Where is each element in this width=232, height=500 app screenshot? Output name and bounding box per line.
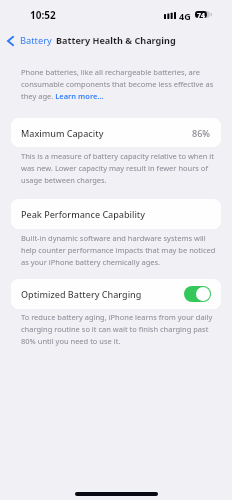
staticText: Built-in dynamic software and hardware s… <box>21 233 216 268</box>
button[interactable]: Battery <box>7 31 52 50</box>
staticText: 10:52 <box>30 8 56 22</box>
staticText: Phone batteries, like all rechargeable b… <box>21 67 216 102</box>
staticText: 4G <box>179 10 191 22</box>
staticText: 86% <box>192 127 210 139</box>
button[interactable]: Optimized Battery Charging toggle <box>184 286 211 302</box>
staticText: Peak Performance Capability <box>21 208 146 220</box>
button[interactable]: Maximum Capacity <box>11 118 221 147</box>
staticText: Battery <box>20 34 52 47</box>
staticText: 74 <box>197 11 205 18</box>
staticText: Battery Health & Charging <box>56 34 176 46</box>
staticText: To reduce battery aging, iPhone learns f… <box>21 312 216 347</box>
staticText: This is a measure of battery capacity re… <box>21 151 216 186</box>
button[interactable]: Optimized Battery Charging <box>11 279 221 309</box>
staticText: Maximum Capacity <box>21 127 104 139</box>
button[interactable]: Peak Performance Capability <box>11 199 221 229</box>
staticText: Optimized Battery Charging <box>21 288 142 300</box>
